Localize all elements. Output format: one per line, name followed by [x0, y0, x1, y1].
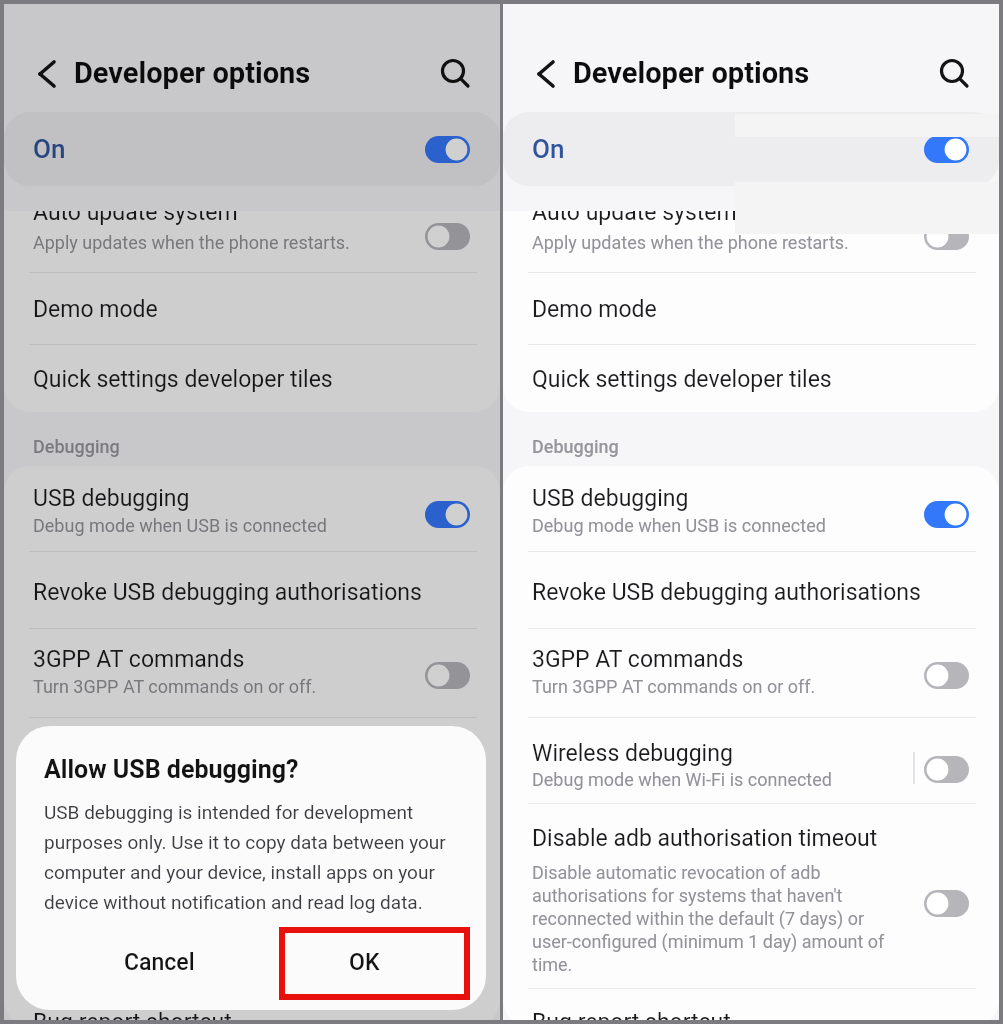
staticText: USB debugging	[532, 485, 689, 512]
staticText: purposes only. Use it to copy data betwe…	[44, 831, 446, 853]
staticText: authorisations for systems that haven't	[33, 885, 344, 906]
staticText: Auto update system	[532, 199, 737, 226]
staticText: On	[532, 134, 565, 164]
staticText: Turn 3GPP AT commands on or off.	[532, 676, 816, 697]
button[interactable]	[4, 552, 500, 628]
button[interactable]	[503, 190, 999, 272]
button[interactable]	[503, 989, 999, 1024]
staticText: Debug mode when USB is connected	[33, 515, 327, 536]
button[interactable]	[503, 345, 999, 412]
button[interactable]	[4, 345, 500, 412]
staticText: Quick settings developer tiles	[532, 366, 832, 393]
staticText: time.	[532, 954, 573, 975]
staticText: Bug report shortcut	[33, 1009, 232, 1024]
staticText: Developer options	[573, 56, 810, 90]
staticText: Disable adb authorisation timeout	[33, 825, 379, 852]
staticText: Debugging	[33, 436, 120, 457]
staticText: Auto update system	[33, 199, 238, 226]
staticText: On	[33, 134, 66, 164]
button[interactable]	[503, 718, 999, 803]
staticText: Demo mode	[532, 296, 657, 323]
staticText: authorisations for systems that haven't	[532, 885, 843, 906]
staticText: USB debugging is intended for developmen…	[44, 801, 414, 823]
button[interactable]: On	[503, 112, 999, 186]
staticText: device without notification and read log…	[44, 891, 423, 913]
staticText: Revoke USB debugging authorisations	[33, 579, 422, 606]
staticText: Wireless debugging	[532, 740, 733, 767]
button[interactable]	[503, 273, 999, 345]
button[interactable]: Cancel	[74, 928, 244, 996]
staticText: 3GPP AT commands	[33, 646, 245, 673]
staticText: Debug mode when Wi-Fi is connected	[532, 769, 832, 790]
button[interactable]	[4, 466, 500, 551]
staticText: user-configured (minimum 1 day) amount o…	[532, 931, 885, 952]
staticText: Apply updates when the phone restarts.	[532, 232, 849, 253]
staticText: OK	[349, 949, 380, 976]
button[interactable]: On	[4, 112, 500, 186]
staticText: Disable automatic revocation of adb	[33, 862, 322, 883]
staticText: reconnected within the default (7 days) …	[532, 908, 865, 929]
button[interactable]	[4, 190, 500, 272]
button[interactable]	[4, 804, 500, 988]
staticText: Debug mode when Wi-Fi is connected	[33, 769, 333, 790]
staticText: USB debugging	[33, 485, 190, 512]
button[interactable]	[4, 273, 500, 345]
staticText: user-configured (minimum 1 day) amount o…	[33, 931, 386, 952]
button[interactable]	[4, 718, 500, 803]
staticText: 3GPP AT commands	[532, 646, 744, 673]
staticText: Developer options	[74, 56, 311, 90]
button[interactable]: Search	[431, 50, 479, 98]
button[interactable]	[503, 629, 999, 717]
button[interactable]: Back	[523, 52, 567, 96]
staticText: Disable automatic revocation of adb	[532, 862, 821, 883]
button[interactable]: OK	[274, 928, 454, 996]
button[interactable]: Search	[930, 50, 978, 98]
button[interactable]	[4, 629, 500, 717]
staticText: Cancel	[124, 949, 195, 976]
staticText: Bug report shortcut	[532, 1009, 731, 1024]
staticText: Allow USB debugging?	[44, 755, 299, 784]
staticText: Apply updates when the phone restarts.	[33, 232, 350, 253]
staticText: computer and your device, install apps o…	[44, 861, 435, 883]
staticText: Quick settings developer tiles	[33, 366, 333, 393]
button[interactable]	[503, 466, 999, 551]
button[interactable]: Back	[24, 52, 68, 96]
staticText: Turn 3GPP AT commands on or off.	[33, 676, 317, 697]
staticText: Disable adb authorisation timeout	[532, 825, 878, 852]
staticText: Demo mode	[33, 296, 158, 323]
staticText: Debug mode when USB is connected	[532, 515, 826, 536]
button[interactable]	[503, 552, 999, 628]
staticText: reconnected within the default (7 days) …	[33, 908, 366, 929]
staticText: Debugging	[532, 436, 619, 457]
button[interactable]	[4, 989, 500, 1024]
staticText: Revoke USB debugging authorisations	[532, 579, 921, 606]
button[interactable]	[503, 804, 999, 988]
staticText: Wireless debugging	[33, 740, 234, 767]
